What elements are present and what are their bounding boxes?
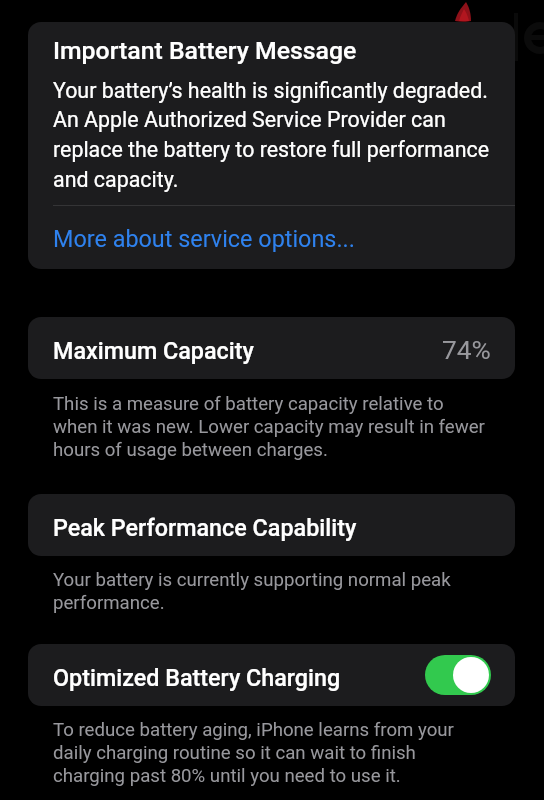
staticText: Your battery’s health is significantly d… [53, 78, 501, 193]
staticText: This is a measure of battery capacity re… [53, 393, 485, 461]
staticText: Peak Performance Capability [53, 514, 357, 541]
button[interactable]: Optimized Battery Charging, on [425, 655, 491, 695]
staticText: More about service options... [53, 225, 355, 252]
staticText: Important Battery Message [53, 36, 357, 65]
staticText: Your battery is currently supporting nor… [53, 569, 485, 614]
button[interactable]: Peak Performance Capability [28, 494, 515, 556]
staticText: Maximum Capacity [53, 337, 254, 364]
staticText: Optimized Battery Charging [53, 664, 341, 691]
staticText: To reduce battery aging, iPhone learns f… [53, 719, 485, 787]
button[interactable]: Optimized Battery Charging [28, 644, 515, 706]
button[interactable]: More about service options... [28, 212, 515, 269]
button[interactable]: Maximum Capacity [28, 317, 515, 379]
staticText: 74% [442, 335, 491, 366]
